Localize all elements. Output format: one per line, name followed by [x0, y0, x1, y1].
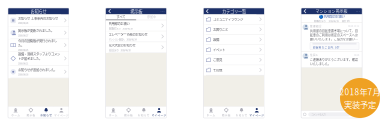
staticText: 参加中: [147, 15, 156, 19]
staticText: お知らせ 工事車両のお知らせ: [18, 16, 58, 21]
button[interactable]: お困りごと: [203, 25, 264, 35]
staticText: お困りごと: [213, 27, 228, 32]
button[interactable]: ホーム: [106, 107, 121, 118]
button[interactable]: マイページ: [151, 107, 167, 118]
button[interactable]: 戻る: [203, 8, 211, 14]
staticText: お知らせ: [30, 8, 46, 14]
button[interactable]: 掲示板が更新されました。: [8, 27, 69, 39]
staticText: マンション管理人 2018/06/24: [108, 38, 136, 41]
button[interactable]: メニュー: [354, 8, 362, 14]
staticText: 今月の回覧板が発行されました。: [18, 38, 57, 48]
button[interactable]: 花火大会のお知らせ: [106, 42, 167, 53]
staticText: ホーム: [206, 113, 215, 117]
button[interactable]: 戻る: [301, 8, 309, 14]
staticText: 掲示板: [124, 113, 133, 117]
staticText: お知らせが追加されました。: [18, 67, 57, 72]
staticText: 🔵 共用部のお願い: [319, 14, 345, 19]
button[interactable]: 戻る: [106, 8, 114, 14]
staticText: 住民A: [310, 53, 318, 57]
staticText: 掲示板: [26, 113, 35, 117]
button[interactable]: ホーム: [8, 107, 23, 118]
button[interactable]: 送信: [353, 112, 360, 117]
button[interactable]: 今月の回覧板が発行されました。: [8, 39, 69, 51]
staticText: お知らせ: [40, 113, 52, 117]
staticText: 06/28: [354, 53, 359, 57]
staticText: マイページ: [249, 113, 264, 117]
staticText: ⋯: [160, 8, 165, 14]
staticText: ホーム: [109, 113, 118, 117]
button[interactable]: 参加中: [136, 14, 167, 20]
staticText: 実装予定: [344, 98, 376, 110]
button[interactable]: 共用部のお願い: [106, 20, 167, 31]
staticText: 設備: [213, 37, 219, 42]
staticText: カテゴリ一覧: [222, 8, 246, 14]
staticText: 2018/06/21: [18, 62, 28, 65]
button[interactable]: 添付: [303, 112, 307, 116]
staticText: ⋯: [356, 8, 361, 14]
button[interactable]: 掲示板: [121, 107, 136, 118]
button[interactable]: お知らせが追加されました。: [8, 66, 69, 78]
button[interactable]: イベント: [203, 45, 264, 55]
button[interactable]: すべて: [106, 14, 136, 20]
staticText: 2018年7月: [339, 86, 380, 98]
staticText: コメントを入力: [311, 113, 325, 116]
staticText: コミュニティラウンジ: [213, 17, 243, 22]
staticText: お知らせ: [235, 113, 247, 117]
button[interactable]: マイページ: [249, 107, 264, 118]
button[interactable]: お知らせ: [234, 107, 249, 118]
staticText: 共用部の自転車置き場について、自転車のご利用は所定のスペースへお願いいたします。…: [310, 29, 359, 41]
button[interactable]: お知らせ: [38, 107, 54, 118]
button[interactable]: 設備: [203, 35, 264, 45]
button[interactable]: 掲示板: [219, 107, 234, 118]
button[interactable]: 設備・清掃スタッフよりコメントが届きました。: [8, 51, 69, 66]
staticText: その他: [213, 68, 222, 72]
button[interactable]: ホーム: [203, 107, 219, 118]
button[interactable]: マイページ: [54, 107, 69, 118]
staticText: 掲示板: [130, 8, 142, 14]
staticText: 花火大会のお知らせ: [108, 43, 135, 47]
staticText: 掲示板が更新されました。: [18, 28, 54, 33]
staticText: 共用部のお願い: [108, 21, 129, 26]
button[interactable]: コミュニティラウンジ: [203, 14, 264, 25]
staticText: すべて: [116, 15, 125, 19]
button[interactable]: ご意見: [203, 55, 264, 65]
staticText: ご連絡ありがとうございます。確認いたしました。: [310, 58, 358, 66]
staticText: 2018/06/18: [18, 73, 28, 76]
staticText: 06/28 10:12: [348, 24, 359, 28]
staticText: イベント: [213, 47, 225, 52]
staticText: お知らせ: [138, 113, 150, 117]
staticText: 掲示板: [222, 113, 231, 117]
button[interactable]: その他: [203, 65, 264, 75]
staticText: 2018/06/25: [18, 48, 28, 52]
button[interactable]: お知らせ: [136, 107, 151, 118]
staticText: ホーム: [11, 113, 20, 117]
staticText: ご意見: [213, 57, 222, 62]
button[interactable]: お知らせ 工事車両のお知らせ: [8, 14, 69, 27]
staticText: マイページ: [54, 113, 69, 117]
staticText: 設備・清掃スタッフよりコメントが届きました。: [18, 52, 60, 61]
staticText: 自治会より 2018/06/20: [108, 48, 130, 52]
staticText: マイページ: [152, 113, 167, 117]
staticText: 2018/06/28: [18, 21, 28, 25]
staticText: エレベーター点検のお知らせ: [108, 32, 147, 37]
staticText: マンション掲示板: [316, 8, 348, 14]
staticText: 駐輪場のご案内.pdf: [312, 46, 339, 49]
staticText: 2018/06/27: [18, 34, 28, 37]
staticText: 管理組合より 2018/06/28 返信 3件: [314, 20, 350, 23]
button[interactable]: エレベーター点検のお知らせ: [106, 31, 167, 42]
staticText: 管理組合より 2018/06/28: [108, 27, 132, 30]
button[interactable]: メニュー: [159, 8, 167, 14]
button[interactable]: 掲示板: [23, 107, 38, 118]
staticText: 管理組合: [310, 24, 322, 28]
